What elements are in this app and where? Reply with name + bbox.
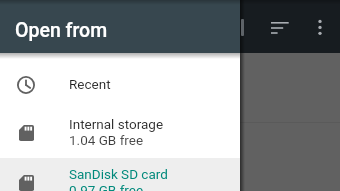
staticText: SanDisk SD card xyxy=(69,166,168,182)
staticText: Internal storage xyxy=(69,116,164,132)
button[interactable]: SanDisk SD card xyxy=(0,158,240,191)
staticText: 0.97 GB free xyxy=(69,182,144,191)
button[interactable]: Sort xyxy=(263,10,297,44)
staticText: 1.04 GB free xyxy=(69,132,144,148)
button[interactable]: More options xyxy=(303,10,337,44)
staticText: Open from xyxy=(15,19,108,42)
button[interactable]: Recent xyxy=(0,61,240,108)
staticText: Recent xyxy=(69,76,111,92)
button[interactable]: Internal storage xyxy=(0,108,240,158)
